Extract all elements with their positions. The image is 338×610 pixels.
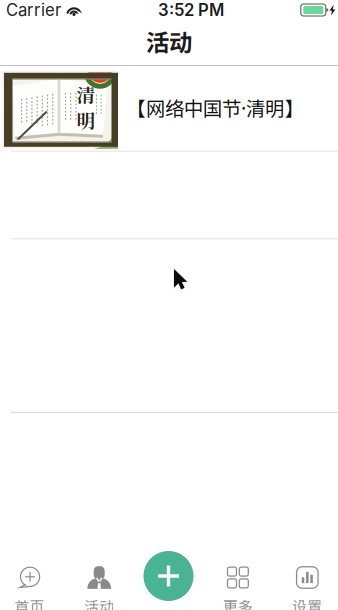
staticText: 活动 bbox=[84, 598, 114, 610]
staticText: 首页 bbox=[15, 598, 45, 610]
staticText: 设置 bbox=[292, 598, 322, 610]
staticText: 活动 bbox=[146, 29, 192, 56]
staticText: 【网络中国节·清明】 bbox=[127, 97, 303, 120]
button[interactable]: 新建 bbox=[143, 551, 193, 601]
staticText: 明 bbox=[76, 106, 95, 133]
button[interactable]: 清 bbox=[0, 66, 338, 151]
staticText: Carrier bbox=[6, 0, 61, 20]
staticText: 3:52 PM bbox=[158, 0, 224, 20]
staticText: 清 bbox=[76, 80, 95, 107]
staticText: 更多 bbox=[223, 598, 253, 610]
button[interactable]: 首页 bbox=[0, 546, 62, 610]
button[interactable]: 设置 bbox=[275, 546, 338, 610]
button[interactable]: 活动 bbox=[67, 546, 131, 610]
button[interactable] bbox=[0, 239, 338, 412]
button[interactable]: 更多 bbox=[206, 546, 270, 610]
